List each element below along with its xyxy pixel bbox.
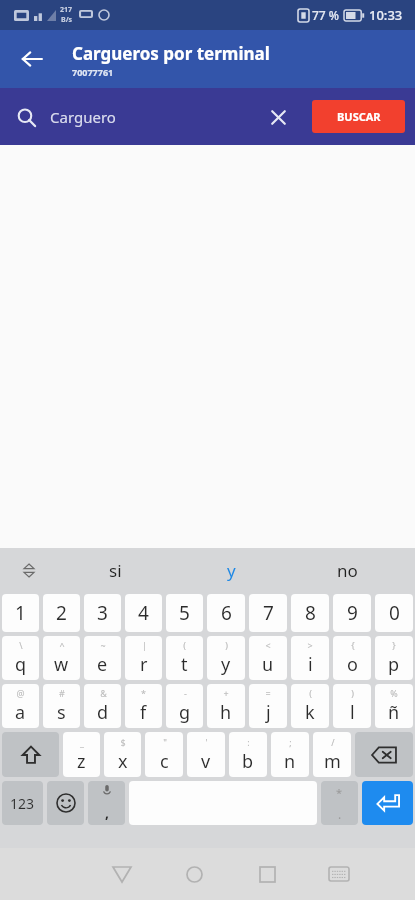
staticText: b xyxy=(242,749,254,774)
button[interactable]: 0 xyxy=(375,594,413,632)
button[interactable]: { xyxy=(333,636,371,680)
button[interactable]: y xyxy=(173,548,289,592)
button[interactable]: Home xyxy=(170,850,218,898)
button[interactable]: > xyxy=(291,636,329,680)
button[interactable]: # xyxy=(43,684,80,728)
staticText: s xyxy=(57,700,66,725)
button[interactable]: BUSCAR xyxy=(312,100,405,133)
staticText: = xyxy=(265,687,271,699)
button[interactable]: ; xyxy=(271,732,309,777)
button[interactable]: @ xyxy=(2,684,39,728)
button[interactable]: Emoji xyxy=(47,781,84,825)
button[interactable]: Back xyxy=(10,37,54,81)
staticText: o xyxy=(347,652,358,677)
staticText: t xyxy=(181,652,188,677)
button[interactable]: ( xyxy=(166,636,203,680)
button[interactable]: 5 xyxy=(166,594,203,632)
button[interactable]: + xyxy=(207,684,245,728)
staticText: > xyxy=(307,639,313,651)
button[interactable]: - xyxy=(166,684,203,728)
button[interactable]: Shift xyxy=(2,732,59,777)
staticText: v xyxy=(201,749,211,774)
button[interactable]: Search xyxy=(6,97,46,137)
button[interactable]: < xyxy=(249,636,287,680)
button[interactable]: Clear xyxy=(259,98,297,136)
button[interactable]: | xyxy=(125,636,162,680)
staticText: d xyxy=(97,700,109,725)
staticText: q xyxy=(15,652,27,677)
button[interactable]: si xyxy=(58,548,173,592)
button[interactable]: = xyxy=(249,684,287,728)
button[interactable]: Voice input xyxy=(88,781,125,825)
staticText: | xyxy=(142,639,147,651)
button[interactable]: 7 xyxy=(249,594,287,632)
staticText: ~ xyxy=(100,639,106,651)
button[interactable]: & xyxy=(84,684,121,728)
staticText: 2 xyxy=(56,600,67,626)
staticText: Carguero xyxy=(50,107,116,127)
staticText: { xyxy=(351,639,355,651)
button[interactable]: ^ xyxy=(43,636,80,680)
staticText: h xyxy=(220,700,232,725)
staticText: ( xyxy=(309,687,312,699)
button[interactable]: ( xyxy=(291,684,329,728)
staticText: 0 xyxy=(389,600,400,626)
button[interactable]: 8 xyxy=(291,594,329,632)
staticText: * xyxy=(336,785,343,800)
button[interactable]: % xyxy=(375,684,413,728)
staticText: - xyxy=(184,687,187,699)
staticText: _ xyxy=(80,736,84,748)
staticText: 3 xyxy=(97,600,108,626)
staticText: y xyxy=(221,652,231,677)
staticText: j xyxy=(266,700,271,725)
button[interactable]: $ xyxy=(104,732,141,777)
button[interactable]: _ xyxy=(63,732,100,777)
staticText: . xyxy=(338,806,342,822)
staticText: m xyxy=(324,749,341,774)
staticText: n xyxy=(284,749,296,774)
button[interactable]: 1 xyxy=(2,594,39,632)
button[interactable]: 123 xyxy=(2,781,43,825)
button[interactable]: no xyxy=(289,548,405,592)
button[interactable]: Backspace xyxy=(355,732,413,777)
staticText: 8 xyxy=(305,600,316,626)
staticText: g xyxy=(179,700,191,725)
staticText: + xyxy=(223,687,229,699)
staticText: 10:33 xyxy=(369,6,403,24)
button[interactable]: } xyxy=(375,636,413,680)
staticText: 217 xyxy=(60,5,73,15)
staticText: i xyxy=(308,652,313,677)
staticText: c xyxy=(160,749,169,774)
staticText: / xyxy=(331,736,335,748)
button[interactable]: ' xyxy=(187,732,225,777)
staticText: 5 xyxy=(179,600,190,626)
button[interactable]: 9 xyxy=(333,594,371,632)
button[interactable]: * xyxy=(321,781,358,825)
button[interactable]: 6 xyxy=(207,594,245,632)
button[interactable]: 4 xyxy=(125,594,162,632)
button[interactable]: * xyxy=(125,684,162,728)
staticText: p xyxy=(388,652,400,677)
button[interactable]: : xyxy=(229,732,267,777)
button[interactable]: ) xyxy=(207,636,245,680)
staticText: ' xyxy=(205,736,208,748)
button[interactable]: 3 xyxy=(84,594,121,632)
staticText: ^ xyxy=(59,639,65,651)
button[interactable]: ) xyxy=(333,684,371,728)
button[interactable]: " xyxy=(145,732,183,777)
staticText: BUSCAR xyxy=(337,109,381,124)
button[interactable]: Expand suggestions xyxy=(0,548,58,592)
button[interactable]: Recent apps xyxy=(243,850,291,898)
button[interactable]: \ xyxy=(2,636,39,680)
button[interactable]: Back xyxy=(98,850,146,898)
button[interactable]: Enter xyxy=(362,781,413,825)
button[interactable]: 2 xyxy=(43,594,80,632)
staticText: si xyxy=(109,559,122,582)
staticText: z xyxy=(77,749,86,774)
button[interactable]: Hide keyboard xyxy=(315,850,363,898)
button[interactable]: / xyxy=(313,732,351,777)
staticText: r xyxy=(140,652,148,677)
staticText: 7 xyxy=(263,600,274,626)
button[interactable]: ~ xyxy=(84,636,121,680)
